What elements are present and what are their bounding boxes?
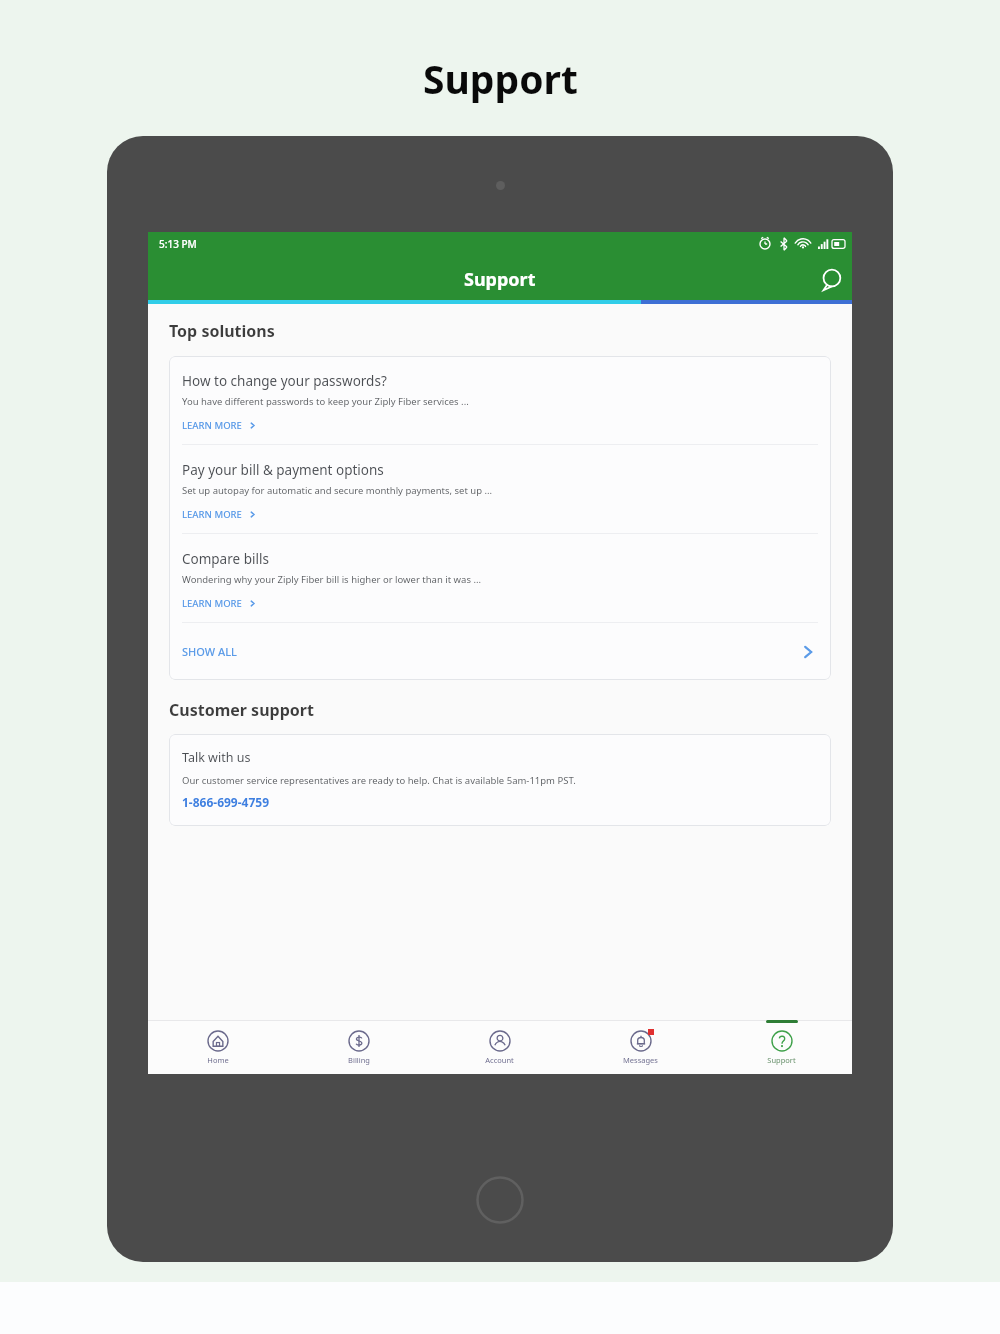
staticText: LEARN MORE (182, 597, 242, 610)
staticText: Top solutions (169, 320, 275, 342)
button[interactable]: Billing (288, 1020, 429, 1074)
button[interactable]: Messages (570, 1020, 711, 1074)
button[interactable]: Home (148, 1020, 288, 1074)
staticText: Compare bills (182, 550, 269, 568)
staticText: Billing (348, 1055, 370, 1065)
staticText: Support (464, 267, 536, 292)
button[interactable]: Chat (810, 258, 852, 300)
button[interactable]: SHOW ALL (169, 623, 831, 680)
staticText: Customer support (169, 699, 314, 721)
staticText: Set up autopay for automatic and secure … (182, 484, 493, 497)
staticText: Wondering why your Ziply Fiber bill is h… (182, 573, 482, 586)
button[interactable]: Support (711, 1020, 852, 1074)
staticText: Account (485, 1055, 514, 1065)
staticText: Our customer service representatives are… (182, 774, 576, 787)
staticText: Pay your bill & payment options (182, 461, 384, 479)
button[interactable]: Account (429, 1020, 570, 1074)
staticText: 1-866-699-4759 (182, 794, 270, 810)
staticText: Support (767, 1055, 796, 1065)
button[interactable]: Talk with us (169, 734, 831, 826)
staticText: Messages (623, 1055, 658, 1065)
staticText: LEARN MORE (182, 419, 242, 432)
staticText: How to change your passwords? (182, 372, 387, 390)
button[interactable]: How to change your passwords? (169, 356, 831, 444)
staticText: Talk with us (182, 749, 251, 766)
staticText: SHOW ALL (182, 644, 237, 659)
staticText: Support (423, 52, 578, 105)
staticText: 5:13 PM (159, 237, 197, 251)
staticText: Home (207, 1055, 229, 1065)
staticText: You have different passwords to keep you… (182, 395, 469, 408)
button[interactable]: Compare bills (169, 534, 831, 622)
staticText: LEARN MORE (182, 508, 242, 521)
button[interactable]: Pay your bill & payment options (169, 445, 831, 533)
